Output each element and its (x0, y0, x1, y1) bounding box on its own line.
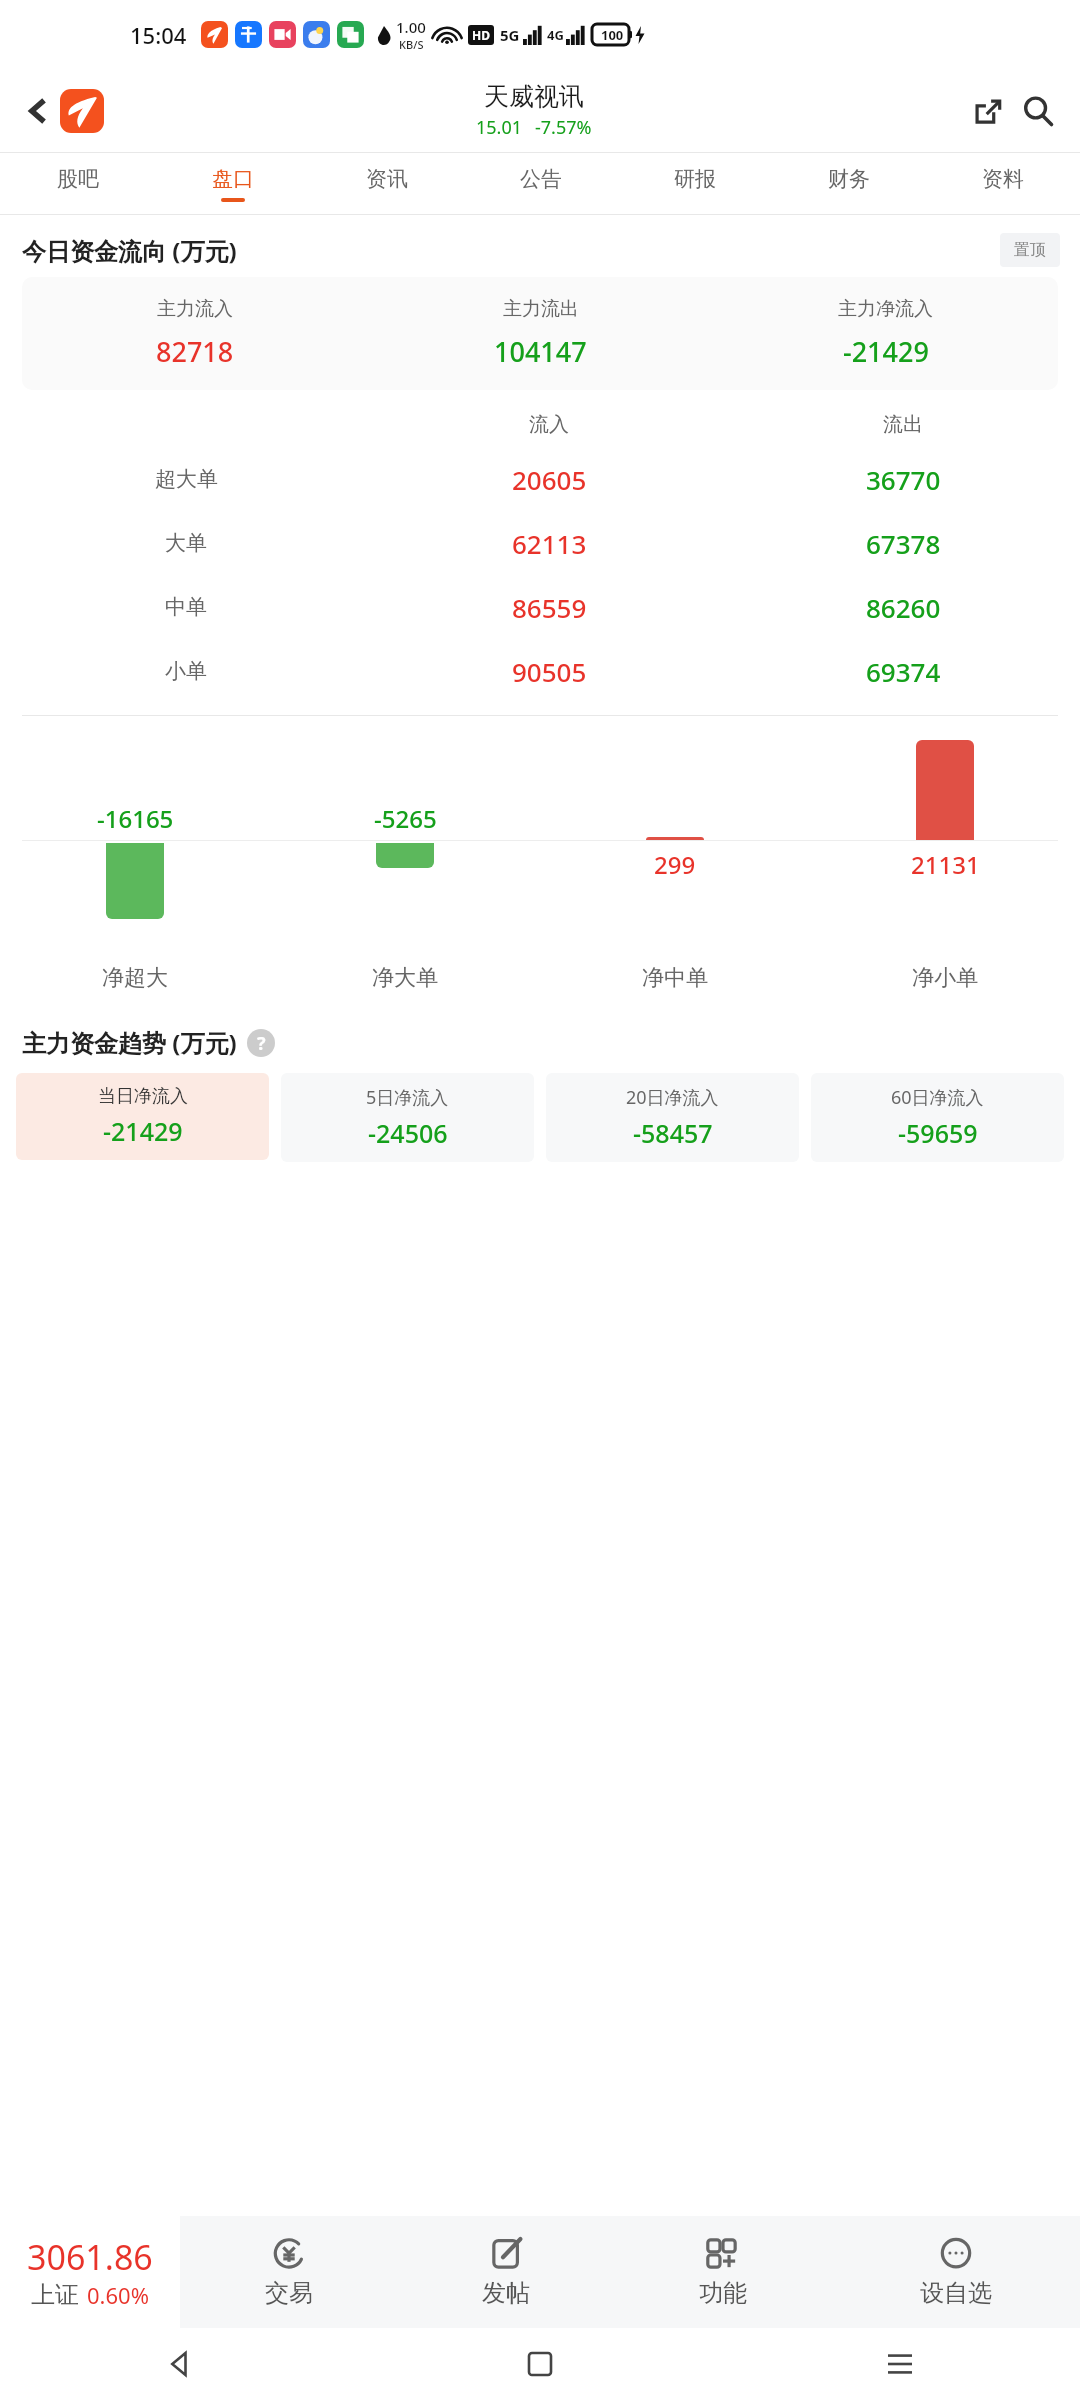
button[interactable]: Back (0, 2328, 360, 2400)
staticText: 流入 (529, 412, 569, 437)
staticText: 299 (654, 848, 696, 881)
staticText: 5G (500, 25, 520, 45)
staticText: 0.60% (87, 2280, 149, 2310)
button[interactable]: Help (247, 1029, 275, 1057)
button[interactable]: Recents (720, 2328, 1080, 2400)
staticText: 1.00 (396, 17, 426, 37)
staticText: 86559 (512, 590, 587, 625)
button[interactable]: Back (16, 89, 60, 133)
staticText: -21429 (103, 1114, 183, 1148)
staticText: 股吧 (57, 166, 99, 192)
staticText: 当日净流入 (98, 1085, 188, 1108)
staticText: 62113 (512, 526, 587, 561)
staticText: 研报 (674, 166, 716, 192)
button[interactable]: 置顶 (1000, 233, 1060, 267)
button[interactable]: 3061.86 (0, 2216, 180, 2328)
staticText: 4G (547, 26, 564, 44)
staticText: 5日净流入 (366, 1085, 449, 1110)
staticText: 主力净流入 (838, 297, 933, 321)
staticText: 主力资金趋势 (万元) (22, 1026, 237, 1059)
staticText: ? (257, 1031, 266, 1056)
staticText: 置顶 (1014, 240, 1046, 260)
button[interactable]: 小单 (0, 639, 1080, 703)
button[interactable]: 研报 (618, 153, 772, 215)
button[interactable]: 大单 (0, 511, 1080, 575)
staticText: -5265 (374, 802, 437, 835)
staticText: 公告 (520, 166, 562, 192)
staticText: 104147 (494, 333, 587, 370)
staticText: 上证 (31, 2280, 79, 2310)
staticText: 主力流入 (157, 297, 233, 321)
staticText: 20605 (512, 462, 587, 497)
staticText: 90505 (512, 654, 587, 689)
button[interactable]: 主力流入 (22, 277, 1058, 390)
staticText: 大单 (165, 530, 207, 556)
staticText: 69374 (866, 654, 941, 689)
staticText: 20日净流入 (626, 1085, 719, 1110)
staticText: 资料 (982, 166, 1024, 192)
staticText: 设自选 (920, 2278, 992, 2308)
staticText: 净小单 (912, 964, 978, 992)
staticText: HD (472, 27, 490, 43)
staticText: 超大单 (155, 466, 218, 492)
staticText: -59659 (898, 1116, 978, 1150)
staticText: 今日资金流向 (万元) (22, 234, 237, 267)
staticText: 3061.86 (27, 2234, 153, 2280)
button[interactable]: 资讯 (310, 153, 464, 215)
staticText: 流出 (883, 412, 923, 437)
staticText: 盘口 (212, 166, 254, 192)
button[interactable]: Share (964, 87, 1012, 135)
button[interactable]: 发帖 (397, 2216, 614, 2328)
button[interactable]: 资料 (926, 153, 1080, 215)
button[interactable]: 当日净流入 (16, 1073, 269, 1160)
staticText: 86260 (866, 590, 941, 625)
staticText: 36770 (866, 462, 941, 497)
button[interactable]: 功能 (614, 2216, 831, 2328)
button[interactable]: Search (1012, 85, 1064, 137)
button[interactable]: 中单 (0, 575, 1080, 639)
staticText: 功能 (699, 2278, 747, 2308)
staticText: 60日净流入 (891, 1085, 984, 1110)
staticText: 发帖 (482, 2278, 530, 2308)
staticText: 天威视讯 (484, 81, 584, 112)
staticText: 资讯 (366, 166, 408, 192)
staticText: 净超大 (102, 964, 168, 992)
button[interactable]: 股吧 (0, 153, 155, 215)
staticText: KB/S (399, 37, 424, 52)
button[interactable]: 公告 (464, 153, 618, 215)
button[interactable]: 设自选 (831, 2216, 1080, 2328)
staticText: 主力流出 (503, 297, 579, 321)
button[interactable]: 盘口 (155, 153, 310, 215)
button[interactable]: 财务 (772, 153, 926, 215)
staticText: -58457 (633, 1116, 713, 1150)
button[interactable]: 超大单 (0, 447, 1080, 511)
staticText: 财务 (828, 166, 870, 192)
button[interactable]: 60日净流入 (811, 1073, 1064, 1162)
button[interactable]: App logo (60, 89, 104, 133)
staticText: -16165 (97, 802, 174, 835)
button[interactable]: 交易 (180, 2216, 397, 2328)
staticText: 82718 (156, 333, 234, 370)
staticText: -7.57% (535, 115, 592, 140)
staticText: 交易 (265, 2278, 313, 2308)
staticText: 净大单 (372, 964, 438, 992)
staticText: 小单 (165, 658, 207, 684)
staticText: 中单 (165, 594, 207, 620)
button[interactable]: 20日净流入 (546, 1073, 799, 1162)
staticText: -24506 (368, 1116, 448, 1150)
staticText: -21429 (843, 333, 929, 370)
staticText: 21131 (911, 848, 980, 881)
staticText: 15.01 (476, 115, 523, 140)
button[interactable]: Home (360, 2328, 720, 2400)
staticText: 100 (601, 26, 624, 44)
button[interactable]: 5日净流入 (281, 1073, 534, 1162)
staticText: 67378 (866, 526, 941, 561)
staticText: 15:04 (130, 20, 187, 50)
staticText: 净中单 (642, 964, 708, 992)
